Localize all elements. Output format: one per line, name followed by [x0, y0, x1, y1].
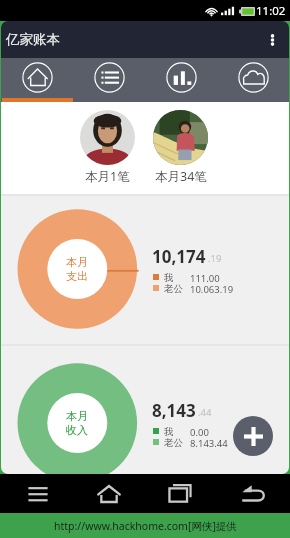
staticText: 支出 [66, 269, 88, 283]
staticText: 收入 [66, 423, 88, 437]
staticText: 本月1笔 [85, 168, 130, 185]
button[interactable]: Add record [233, 416, 273, 456]
button[interactable]: Cloud [217, 58, 289, 102]
staticText: 亿家账本 [6, 31, 60, 48]
staticText: 本月 [66, 409, 88, 423]
staticText: .44 [198, 406, 212, 419]
button[interactable]: Home [91, 474, 127, 513]
staticText: 本月34笔 [155, 168, 207, 185]
button[interactable]: Recent apps [162, 474, 198, 513]
staticText: http://www.hackhome.com[网侠]提供 [54, 519, 237, 533]
button[interactable]: 本月1笔 [80, 110, 135, 185]
button[interactable]: Statistics [145, 58, 217, 102]
staticText: 老公 [164, 283, 183, 293]
button[interactable]: Menu [20, 474, 56, 513]
button[interactable]: Home [1, 58, 73, 102]
staticText: 8,143.44 [190, 437, 228, 447]
staticText: 10,063.19 [190, 283, 234, 293]
button[interactable]: Back [235, 474, 271, 513]
button[interactable]: 本月34笔 [153, 110, 208, 185]
staticText: .19 [208, 252, 222, 265]
staticText: 本月 [66, 255, 88, 269]
staticText: 0.00 [190, 426, 209, 436]
button[interactable]: Records [73, 58, 145, 102]
staticText: 10,174 [152, 245, 206, 268]
staticText: 11:02 [256, 3, 286, 19]
staticText: 老公 [164, 437, 183, 447]
button[interactable]: More options [257, 21, 289, 58]
staticText: 我 [164, 272, 174, 282]
staticText: 我 [164, 426, 174, 436]
staticText: 8,143 [152, 399, 196, 422]
staticText: 111.00 [190, 272, 220, 282]
